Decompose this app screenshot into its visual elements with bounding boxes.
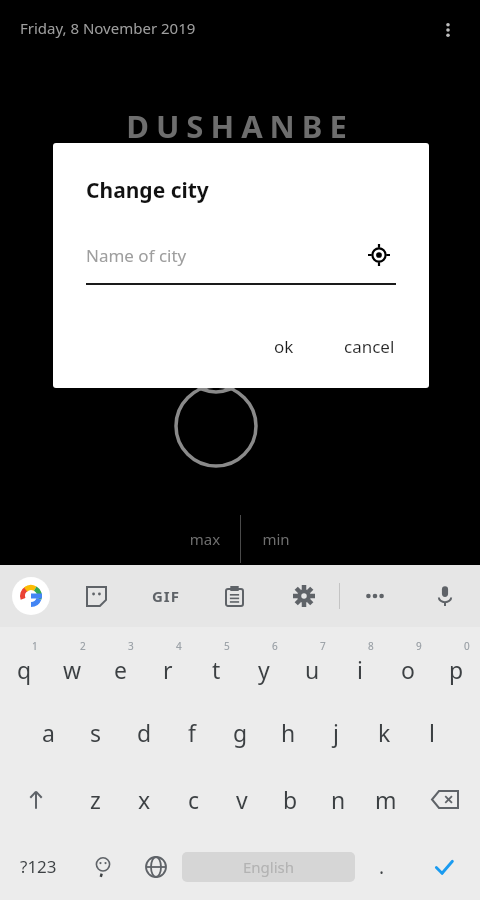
button[interactable]: Use my location: [362, 238, 396, 272]
staticText: g: [233, 717, 248, 748]
staticText: 9: [416, 639, 422, 653]
button[interactable]: a: [24, 699, 72, 766]
staticText: p: [449, 654, 464, 685]
button[interactable]: Name of city: [86, 233, 396, 277]
button[interactable]: h: [264, 699, 312, 766]
button[interactable]: Shift: [0, 766, 71, 833]
button[interactable]: 3: [96, 633, 144, 699]
staticText: m: [375, 784, 397, 815]
staticText: Change city: [86, 176, 209, 205]
staticText: cancel: [344, 335, 395, 358]
staticText: u: [305, 654, 320, 685]
staticText: n: [331, 784, 346, 815]
staticText: Friday, 8 November 2019: [20, 18, 196, 38]
staticText: h: [281, 717, 296, 748]
staticText: 8: [368, 639, 374, 653]
button[interactable]: l: [408, 699, 456, 766]
staticText: GIF: [152, 586, 180, 606]
staticText: DUSHANBE: [0, 105, 480, 147]
button[interactable]: Enter: [408, 833, 480, 900]
staticText: c: [188, 784, 200, 815]
button[interactable]: GIF: [131, 565, 200, 627]
staticText: q: [17, 654, 32, 685]
staticText: l: [429, 717, 435, 748]
button[interactable]: 1: [0, 633, 48, 699]
staticText: .: [379, 854, 385, 880]
staticText: 4: [176, 639, 182, 653]
button[interactable]: 4: [144, 633, 192, 699]
staticText: English: [243, 857, 295, 877]
staticText: x: [138, 784, 151, 815]
button[interactable]: Change language: [129, 833, 182, 900]
button[interactable]: Backspace: [410, 766, 480, 833]
button[interactable]: Stickers: [62, 565, 131, 627]
button[interactable]: More: [340, 565, 410, 627]
button[interactable]: English: [182, 833, 355, 900]
button[interactable]: cancel: [332, 329, 407, 364]
staticText: d: [137, 717, 152, 748]
button[interactable]: 7: [288, 633, 336, 699]
staticText: i: [357, 654, 363, 685]
button[interactable]: s: [72, 699, 120, 766]
button[interactable]: 9: [384, 633, 432, 699]
button[interactable]: x: [120, 766, 169, 833]
staticText: f: [188, 717, 196, 748]
button[interactable]: 2: [48, 633, 96, 699]
staticText: ?123: [20, 855, 57, 878]
button[interactable]: ok: [262, 329, 306, 364]
button[interactable]: v: [218, 766, 266, 833]
button[interactable]: ?123: [0, 833, 76, 900]
button[interactable]: m: [362, 766, 410, 833]
button[interactable]: 5: [192, 633, 240, 699]
button[interactable]: c: [169, 766, 218, 833]
staticText: 6: [272, 639, 278, 653]
staticText: ok: [274, 335, 294, 358]
staticText: o: [401, 654, 415, 685]
staticText: min: [241, 529, 311, 549]
button[interactable]: d: [120, 699, 168, 766]
staticText: r: [163, 654, 173, 685]
staticText: 3: [128, 639, 134, 653]
button[interactable]: b: [266, 766, 314, 833]
button[interactable]: Google: [0, 565, 62, 627]
button[interactable]: j: [312, 699, 360, 766]
staticText: 2: [80, 639, 86, 653]
staticText: s: [90, 717, 102, 748]
staticText: w: [63, 654, 82, 685]
button[interactable]: Settings: [269, 565, 339, 627]
button[interactable]: Voice input: [410, 565, 480, 627]
staticText: e: [114, 654, 127, 685]
staticText: 5: [224, 639, 230, 653]
button[interactable]: More options: [426, 8, 470, 52]
button[interactable]: Clipboard: [200, 565, 269, 627]
button[interactable]: 6: [240, 633, 288, 699]
staticText: 7: [320, 639, 326, 653]
button[interactable]: f: [168, 699, 216, 766]
staticText: max: [170, 529, 240, 549]
staticText: Name of city: [86, 244, 362, 267]
button[interactable]: n: [314, 766, 362, 833]
staticText: a: [42, 717, 55, 748]
button[interactable]: 0: [432, 633, 480, 699]
button[interactable]: 8: [336, 633, 384, 699]
staticText: k: [378, 717, 391, 748]
staticText: b: [283, 784, 298, 815]
staticText: v: [236, 784, 248, 815]
button[interactable]: Emoji: [76, 833, 129, 900]
button[interactable]: .: [355, 833, 408, 900]
button[interactable]: z: [71, 766, 120, 833]
staticText: j: [333, 717, 339, 748]
button[interactable]: g: [216, 699, 264, 766]
staticText: 1: [32, 639, 38, 653]
staticText: z: [90, 784, 101, 815]
staticText: 0: [464, 639, 470, 653]
staticText: t: [212, 654, 221, 685]
button[interactable]: k: [360, 699, 408, 766]
staticText: y: [258, 654, 270, 685]
